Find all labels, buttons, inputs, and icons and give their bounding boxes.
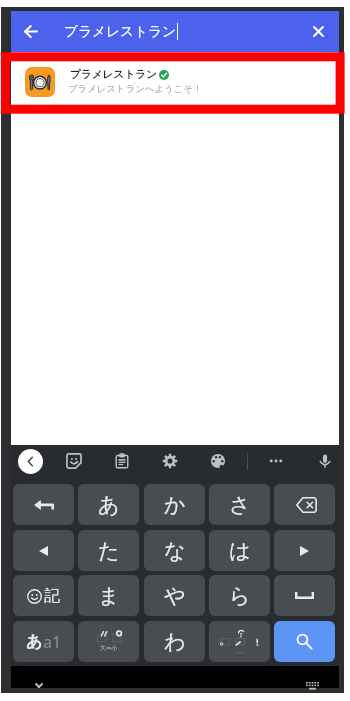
button[interactable]: あ [78, 484, 139, 525]
staticText: a1 [43, 631, 62, 653]
staticText: た [98, 538, 120, 564]
button[interactable]: Punctuation [209, 621, 270, 662]
staticText: あ [26, 632, 43, 652]
staticText: さ [229, 492, 251, 518]
button[interactable]: 記 [13, 575, 74, 616]
button[interactable]: Clear search [298, 11, 339, 52]
staticText: は [229, 538, 251, 564]
button[interactable]: や [144, 575, 205, 616]
button[interactable]: Backspace [274, 484, 335, 525]
button[interactable]: Stickers [60, 447, 88, 475]
button[interactable]: わ [144, 621, 205, 662]
button[interactable]: ま [78, 575, 139, 616]
button[interactable]: Expand keyboard toolbar [18, 449, 43, 474]
staticText: プラメレストランへようこそ！ [68, 83, 203, 95]
button[interactable]: Undo [13, 484, 74, 525]
staticText: な [164, 538, 186, 564]
button[interactable]: Hide keyboard [25, 669, 53, 688]
button[interactable]: Change character size [78, 621, 139, 662]
button[interactable]: プラメレストラン [11, 52, 339, 112]
staticText: 記 [44, 586, 60, 606]
button[interactable]: な [144, 530, 205, 571]
button[interactable]: Space [274, 575, 335, 616]
staticText: か [164, 492, 186, 518]
button[interactable]: は [209, 530, 270, 571]
staticText: ま [98, 583, 120, 609]
button[interactable]: Switch keyboard [299, 670, 325, 690]
staticText: ら [229, 583, 251, 609]
button[interactable]: Back [11, 11, 53, 52]
button[interactable]: Clipboard [108, 447, 136, 475]
staticText: わ [164, 629, 186, 655]
button[interactable]: た [78, 530, 139, 571]
staticText: 大⇔小 [100, 644, 118, 652]
button[interactable]: Move cursor right [274, 530, 335, 571]
staticText: あ [98, 492, 120, 518]
button[interactable]: Settings [156, 447, 184, 475]
staticText: プラメレストラン [64, 23, 177, 40]
staticText: プラメレストラン [70, 68, 157, 81]
staticText: や [164, 583, 186, 609]
button[interactable]: Voice input [311, 447, 339, 475]
button[interactable]: か [144, 484, 205, 525]
button[interactable]: さ [209, 484, 270, 525]
button[interactable]: あ [13, 621, 74, 662]
button[interactable]: More options [262, 447, 290, 475]
button[interactable]: Theme [204, 447, 232, 475]
button[interactable]: ら [209, 575, 270, 616]
button[interactable]: Search [274, 621, 335, 662]
button[interactable]: Move cursor left [13, 530, 74, 571]
